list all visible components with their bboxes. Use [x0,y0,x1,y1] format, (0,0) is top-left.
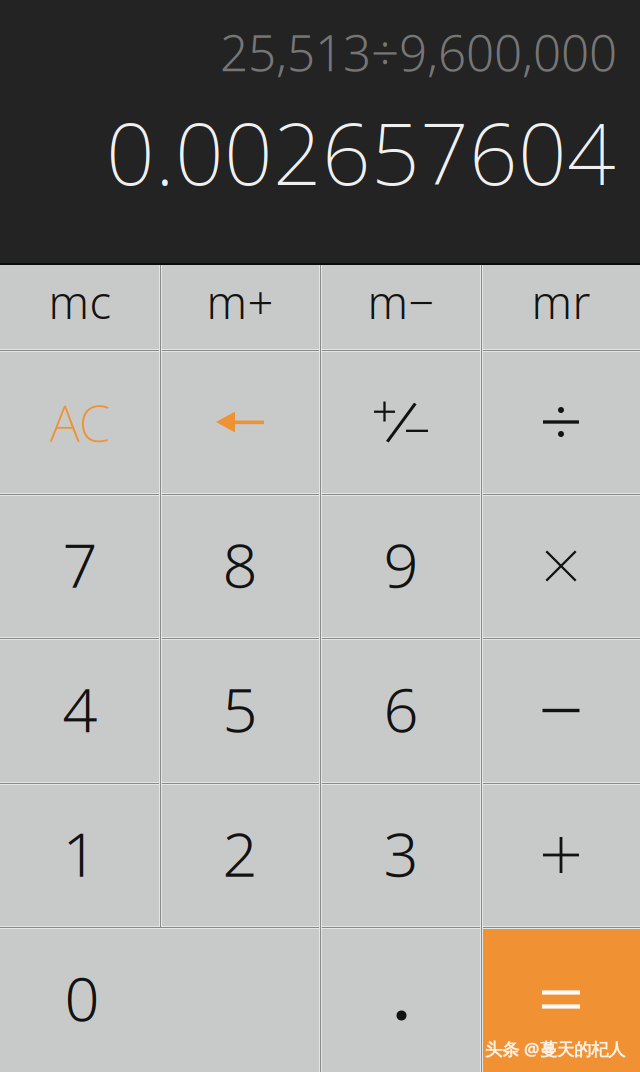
button[interactable]: mc [0,265,160,350]
button[interactable]: m+ [160,265,320,350]
staticText: 0 [64,957,99,1038]
staticText: 1 [62,812,97,894]
button[interactable]: Toggle sign [320,350,482,494]
staticText: 2 [222,812,257,894]
staticText: mr [531,271,590,332]
staticText: mc [48,271,111,332]
staticText: 8 [222,523,257,605]
button[interactable]: 0 [0,927,321,1072]
button[interactable]: mr [482,265,640,350]
button[interactable]: Multiply [482,494,640,638]
button[interactable]: 7 [0,494,160,638]
button[interactable]: Equals [482,927,640,1072]
button[interactable]: 6 [320,638,482,783]
staticText: 5 [222,668,257,749]
staticText: AC [50,388,110,456]
staticText: 4 [62,668,97,749]
button[interactable]: 5 [160,638,320,783]
staticText: m+ [206,271,273,332]
button[interactable]: Divide [482,350,640,494]
staticText: 3 [383,812,418,894]
staticText: 头条 @蔓天的杞人 [485,1037,625,1060]
button[interactable]: 9 [320,494,482,638]
button[interactable]: AC [0,350,160,494]
staticText: 6 [383,668,418,749]
staticText: 9 [383,523,418,605]
staticText: 7 [62,523,97,605]
button[interactable]: m− [320,265,482,350]
button[interactable]: 4 [0,638,160,783]
button[interactable]: 3 [320,783,482,927]
button[interactable]: 1 [0,783,160,927]
staticText: 0.002657604 [106,95,616,209]
button[interactable]: 2 [160,783,320,927]
button[interactable]: Backspace [160,350,320,494]
button[interactable]: Minus [482,638,640,783]
staticText: m− [367,271,434,332]
staticText: 25,513÷9,600,000 [220,19,617,85]
button[interactable]: 8 [160,494,320,638]
button[interactable]: Plus [482,783,640,927]
button[interactable]: Decimal point [321,927,482,1072]
